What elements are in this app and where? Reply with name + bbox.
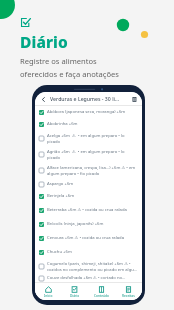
staticText: Agrião +6m ⚠ • em algum preparo • lo pic… <box>47 149 138 160</box>
staticText: oferecidos e faça anotações <box>20 69 119 79</box>
button[interactable]: Receitas <box>115 283 142 300</box>
staticText: Abobrinha +6m <box>47 121 138 127</box>
staticText: Abóbora (japonesa seca, moranga) +6m <box>47 109 138 115</box>
staticText: Cenoura +6m ⚠ • cozida ou crua ralada <box>47 235 138 241</box>
button[interactable]: Chuchu +6m <box>35 246 142 258</box>
staticText: Acelga +6m ⚠ • em algum preparo • lo pic… <box>47 133 138 144</box>
button[interactable]: Berinjela +6m <box>35 190 142 202</box>
staticText: Aspargo +6m <box>47 181 138 187</box>
staticText: Berinjela +6m <box>47 193 138 199</box>
staticText: Cogumelo (paris, shimeji, shitake) +6m ⚠… <box>47 261 138 272</box>
button[interactable]: Couve desfolhada +6m ⚠ • cortado no... <box>35 274 142 282</box>
button[interactable]: Diário <box>61 283 88 300</box>
staticText: Chuchu +6m <box>47 249 138 255</box>
button[interactable]: Brócolis (ninja, japonês) +6m <box>35 218 142 230</box>
button[interactable]: Voltar <box>39 95 47 103</box>
staticText: Diário <box>20 31 68 52</box>
button[interactable]: Alface (americana, crespa, lisa...) +6m … <box>35 162 142 178</box>
button[interactable]: Acelga +6m ⚠ • em algum preparo • lo pic… <box>35 130 142 146</box>
staticText: Conteúdo <box>94 294 109 298</box>
button[interactable]: Cogumelo (paris, shimeji, shitake) +6m ⚠… <box>35 258 142 274</box>
staticText: Verduras e Legumes - 30 li... <box>50 95 130 102</box>
staticText: Registre os alimentos <box>20 56 97 66</box>
staticText: Brócolis (ninja, japonês) +6m <box>47 221 138 227</box>
button[interactable]: Beterraba +6m ⚠ • cozida ou crua ralada <box>35 202 142 218</box>
button[interactable]: Aspargo +6m <box>35 178 142 190</box>
button[interactable]: Abóbora (japonesa seca, moranga) +6m <box>35 106 142 118</box>
staticText: Início <box>44 294 53 298</box>
button[interactable]: Início <box>35 283 61 300</box>
button[interactable]: Conteúdo <box>88 283 115 300</box>
button[interactable]: Abobrinha +6m <box>35 118 142 130</box>
staticText: Couve desfolhada +6m ⚠ • cortado no... <box>47 275 138 281</box>
staticText: Diário <box>70 294 80 298</box>
staticText: Alface (americana, crespa, lisa...) +6m … <box>47 165 138 176</box>
staticText: Receitas <box>122 294 135 298</box>
button[interactable]: Agrião +6m ⚠ • em algum preparo • lo pic… <box>35 146 142 162</box>
staticText: Beterraba +6m ⚠ • cozida ou crua ralada <box>47 207 138 213</box>
button[interactable]: Cenoura +6m ⚠ • cozida ou crua ralada <box>35 230 142 246</box>
button[interactable]: Notas <box>130 95 138 103</box>
